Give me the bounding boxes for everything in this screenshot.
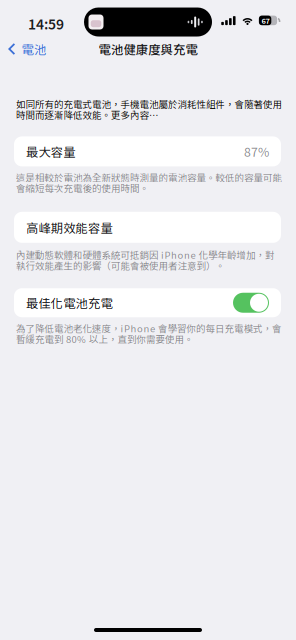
button[interactable]: 最佳化電池充電 xyxy=(0,288,281,317)
staticText: 最佳化電池充電 xyxy=(26,294,112,312)
staticText: 14:59 xyxy=(28,13,64,34)
staticText: 電池健康度與充電 xyxy=(99,40,197,58)
staticText: 87% xyxy=(244,142,269,160)
staticText: 這是相較於電池為全新狀態時測量的電池容量。較低的容量可能會縮短每次充電後的使用時… xyxy=(16,170,281,195)
staticText: 67 xyxy=(261,15,269,26)
staticText: 高峰期效能容量 xyxy=(26,218,112,236)
staticText: 如同所有的充電式電池，手機電池屬於消耗性組件，會隨著使用時間而逐漸降低效能。更多… xyxy=(16,97,281,121)
staticText: 內建動態軟體和硬體系統可抵銷因 iPhone 化學年齡增加，對執行效能產生的影響… xyxy=(16,248,274,272)
staticText: 最大容量 xyxy=(26,142,75,160)
staticText: 為了降低電池老化速度，iPhone 會學習你的每日充電模式，會暫緩充電到 80%… xyxy=(16,321,281,346)
button[interactable]: 電池 xyxy=(0,38,54,60)
staticText: 電池 xyxy=(22,40,46,58)
